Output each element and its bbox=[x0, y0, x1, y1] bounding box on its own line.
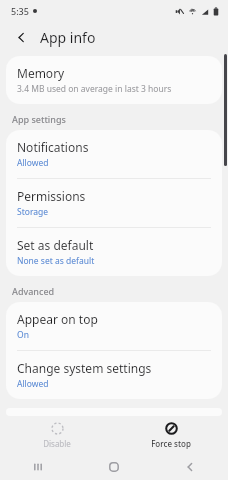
button[interactable]: Home bbox=[76, 454, 152, 480]
staticText: Permissions bbox=[17, 188, 86, 204]
button[interactable]: Force stop bbox=[114, 420, 228, 451]
staticText: Appear on top bbox=[17, 311, 98, 327]
staticText: Storage bbox=[17, 206, 49, 218]
staticText: Set as default bbox=[17, 237, 94, 253]
staticText: On bbox=[17, 329, 29, 341]
staticText: Disable bbox=[43, 438, 71, 449]
staticText: Force stop bbox=[151, 438, 191, 449]
staticText: App settings bbox=[12, 113, 66, 125]
button[interactable]: Recents bbox=[0, 454, 76, 480]
staticText: Change system settings bbox=[17, 360, 152, 376]
staticText: 5:35 bbox=[11, 5, 29, 17]
staticText: Allowed bbox=[17, 157, 49, 169]
staticText: Advanced bbox=[12, 285, 55, 297]
button[interactable]: Permissions bbox=[6, 179, 222, 227]
staticText: App info bbox=[40, 28, 96, 47]
button[interactable]: Memory bbox=[6, 56, 222, 104]
button[interactable]: Back bbox=[10, 26, 32, 48]
staticText: Notifications bbox=[17, 139, 89, 155]
button[interactable]: Change system settings bbox=[6, 351, 222, 399]
staticText: Allowed bbox=[17, 378, 49, 390]
staticText: None set as default bbox=[17, 255, 95, 267]
staticText: Memory bbox=[17, 65, 65, 81]
button[interactable]: Disable bbox=[0, 420, 114, 451]
staticText: 3.4 MB used on average in last 3 hours bbox=[17, 83, 172, 95]
button[interactable]: Set as default bbox=[6, 228, 222, 276]
button[interactable]: Back bbox=[152, 454, 228, 480]
button[interactable]: Appear on top bbox=[6, 302, 222, 350]
button[interactable]: Notifications bbox=[6, 130, 222, 178]
